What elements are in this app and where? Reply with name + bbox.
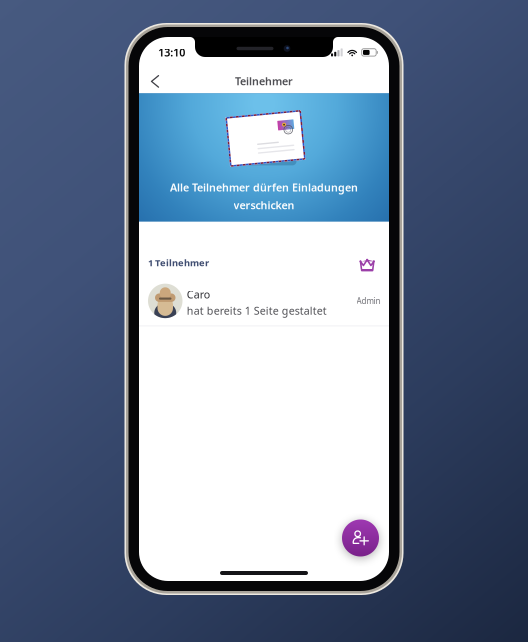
staticText: Caro — [187, 287, 210, 301]
button[interactable]: Admin badge — [354, 253, 380, 277]
staticText: Admin — [356, 296, 380, 306]
staticText: hat bereits 1 Seite gestaltet — [187, 303, 327, 318]
staticText: 13:10 — [158, 45, 185, 59]
button[interactable]: Add participant — [342, 519, 379, 556]
staticText: verschicken — [233, 198, 294, 212]
staticText: Alle Teilnehmer dürfen Einladungen — [170, 180, 358, 195]
staticText: 1 Teilnehmer — [148, 256, 209, 269]
button[interactable]: Back — [139, 64, 172, 93]
staticText: Teilnehmer — [235, 74, 293, 88]
button[interactable]: Caro — [139, 276, 389, 326]
